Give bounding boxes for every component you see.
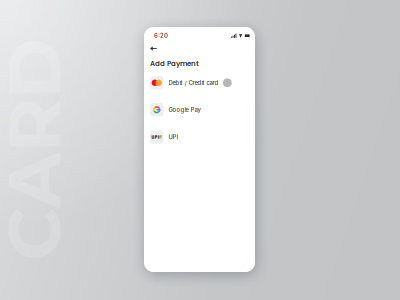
button[interactable]: Google Pay [150, 103, 249, 117]
staticText: Debit / Credit card [168, 79, 218, 86]
staticText: Google Pay [168, 106, 200, 113]
staticText: UPI [168, 133, 178, 141]
button[interactable]: Debit / Credit card [150, 76, 249, 90]
staticText: Add Payment [150, 59, 199, 68]
staticText: 6:20 [154, 32, 168, 39]
staticText: CARD [0, 104, 145, 194]
button[interactable]: Back [150, 42, 165, 55]
button[interactable]: UPI [150, 130, 249, 144]
